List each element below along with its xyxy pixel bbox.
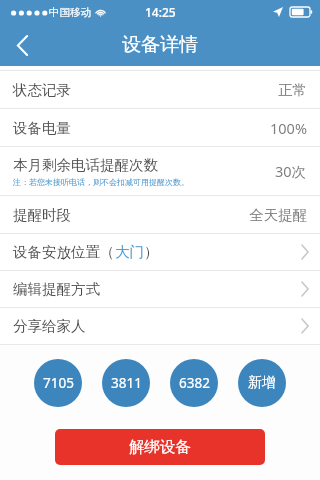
staticText: 14:25 xyxy=(145,4,176,20)
staticText: 设备电量 xyxy=(13,119,71,137)
staticText: 6382 xyxy=(179,374,210,392)
button[interactable]: Back xyxy=(0,24,44,66)
staticText: 新增 xyxy=(248,374,276,392)
button[interactable]: 状态记录 xyxy=(0,71,320,108)
staticText: 100% xyxy=(270,118,307,138)
button[interactable]: 设备安放位置 xyxy=(0,234,320,270)
button[interactable]: 本月剩余电话提醒次数 xyxy=(0,147,320,195)
staticText: 大门 xyxy=(115,243,144,261)
staticText: 3811 xyxy=(111,374,142,392)
staticText: 分享给家人 xyxy=(13,317,86,335)
button[interactable]: 6382 xyxy=(170,359,218,407)
staticText: 编辑提醒方式 xyxy=(13,280,100,298)
staticText: ） xyxy=(144,243,159,261)
staticText: 注：若您未接听电话，则不会扣减可用提醒次数。 xyxy=(13,177,189,187)
button[interactable]: 3811 xyxy=(102,359,150,407)
staticText: 设备详情 xyxy=(122,33,198,57)
staticText: 设备安放位置 xyxy=(13,243,100,261)
button[interactable]: 新增 xyxy=(238,359,286,407)
button[interactable]: 7105 xyxy=(34,359,82,407)
staticText: 提醒时段 xyxy=(13,206,71,224)
staticText: 全天提醒 xyxy=(249,206,307,224)
staticText: （ xyxy=(100,243,115,261)
button[interactable]: 编辑提醒方式 xyxy=(0,271,320,307)
staticText: 解绑设备 xyxy=(129,437,191,457)
staticText: 状态记录 xyxy=(13,81,71,99)
button[interactable]: 设备电量 xyxy=(0,109,320,146)
button[interactable]: 解绑设备 xyxy=(55,429,265,465)
staticText: 30次 xyxy=(275,161,307,181)
button[interactable]: 分享给家人 xyxy=(0,308,320,344)
staticText: 本月剩余电话提醒次数 xyxy=(13,156,158,174)
staticText: 正常 xyxy=(278,81,307,99)
staticText: 7105 xyxy=(43,374,74,392)
button[interactable]: 提醒时段 xyxy=(0,196,320,233)
staticText: 中国移动 xyxy=(49,6,91,19)
